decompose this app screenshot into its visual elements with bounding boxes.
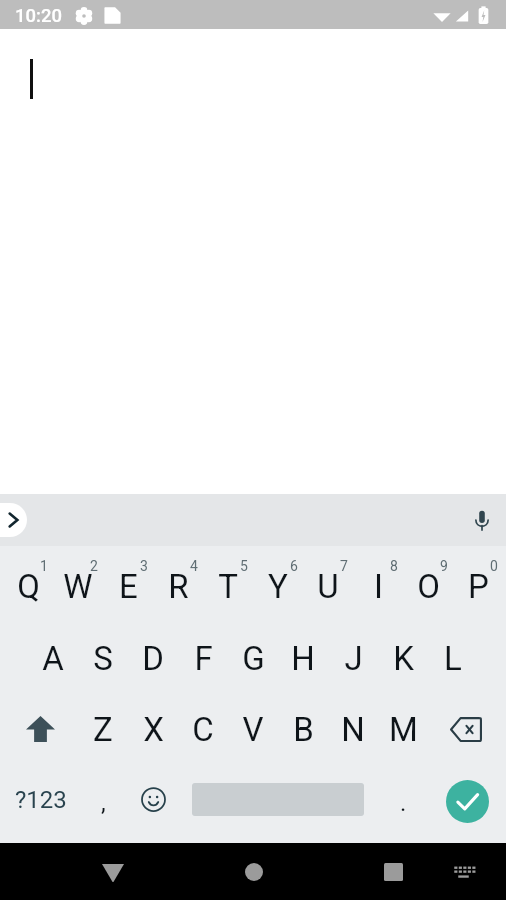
staticText: 2 [90, 558, 98, 574]
staticText: ?123 [15, 786, 67, 814]
button[interactable]: Z [78, 690, 128, 768]
button[interactable]: P [453, 546, 503, 626]
staticText: H [291, 639, 315, 678]
button[interactable]: B [278, 690, 328, 768]
button[interactable]: J [328, 626, 378, 690]
button[interactable]: Y [253, 546, 303, 626]
staticText: R [168, 567, 189, 606]
button[interactable]: H [278, 626, 328, 690]
button[interactable]: L [428, 626, 478, 690]
staticText: E [119, 567, 138, 606]
button[interactable]: Space [178, 762, 378, 837]
staticText: Z [93, 710, 113, 749]
staticText: G [242, 639, 265, 678]
button[interactable]: Backspace [428, 690, 503, 768]
staticText: 7 [340, 558, 348, 574]
staticText: 8 [390, 558, 398, 574]
button[interactable]: Back [90, 849, 136, 895]
staticText: K [393, 639, 414, 678]
button[interactable]: G [228, 626, 278, 690]
button[interactable]: F [178, 626, 228, 690]
button[interactable]: Recent apps [370, 849, 416, 895]
button[interactable]: Emoji [128, 762, 178, 837]
button[interactable]: ?123 [3, 762, 78, 837]
button[interactable]: N [328, 690, 378, 768]
staticText: M [389, 710, 418, 749]
staticText: W [63, 567, 93, 606]
staticText: , [101, 789, 106, 817]
staticText: I [374, 567, 383, 606]
button[interactable]: E [103, 546, 153, 626]
button[interactable]: U [303, 546, 353, 626]
staticText: . [400, 789, 407, 817]
staticText: Q [17, 567, 40, 606]
button[interactable]: Q [3, 546, 53, 626]
staticText: A [42, 639, 64, 678]
staticText: V [242, 710, 264, 749]
staticText: 0 [490, 558, 498, 574]
staticText: 10:20 [15, 5, 62, 27]
staticText: 1 [40, 558, 48, 574]
staticText: B [293, 710, 314, 749]
button[interactable]: I [353, 546, 403, 626]
button[interactable]: . [378, 762, 428, 837]
staticText: P [468, 567, 489, 606]
staticText: D [142, 639, 164, 678]
staticText: C [192, 710, 214, 749]
button[interactable]: Hide keyboard [443, 851, 485, 893]
button[interactable]: R [153, 546, 203, 626]
button[interactable]: D [128, 626, 178, 690]
button[interactable]: Home [230, 849, 276, 895]
staticText: 9 [440, 558, 448, 574]
button[interactable]: Shift [3, 690, 78, 768]
button[interactable]: Text input field [0, 29, 506, 494]
staticText: 5 [240, 558, 248, 574]
staticText: L [444, 639, 462, 678]
button[interactable]: K [378, 626, 428, 690]
button[interactable]: M [378, 690, 428, 768]
staticText: 6 [290, 558, 298, 574]
button[interactable]: Done [428, 762, 503, 837]
staticText: J [344, 639, 363, 678]
staticText: Y [268, 567, 288, 606]
button[interactable]: , [78, 762, 128, 837]
staticText: N [341, 710, 365, 749]
button[interactable]: X [128, 690, 178, 768]
button[interactable]: Voice input [462, 500, 502, 540]
button[interactable]: O [403, 546, 453, 626]
button[interactable]: V [228, 690, 278, 768]
button[interactable]: S [78, 626, 128, 690]
button[interactable]: Expand toolbar [0, 503, 27, 537]
staticText: 3 [140, 558, 148, 574]
staticText: U [317, 567, 339, 606]
staticText: O [417, 567, 440, 606]
button[interactable]: T [203, 546, 253, 626]
staticText: X [143, 710, 164, 749]
button[interactable]: A [28, 626, 78, 690]
button[interactable]: C [178, 690, 228, 768]
staticText: 4 [190, 558, 198, 574]
button[interactable]: W [53, 546, 103, 626]
staticText: S [93, 639, 113, 678]
staticText: T [218, 567, 238, 606]
staticText: F [194, 639, 213, 678]
